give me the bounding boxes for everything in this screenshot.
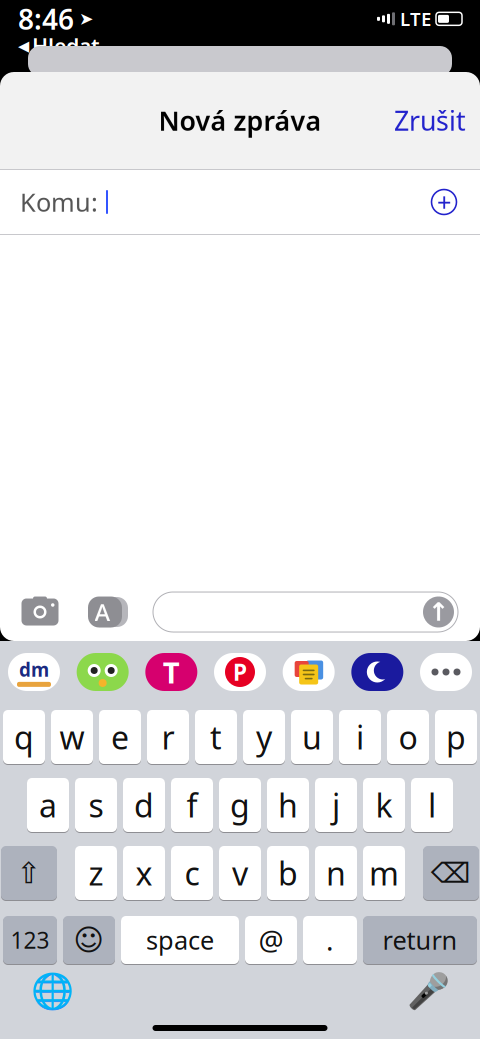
staticText: x [135, 852, 152, 894]
button[interactable]: n [315, 845, 357, 901]
staticText: f [186, 784, 197, 826]
staticText: d [134, 784, 154, 826]
button[interactable]: z [75, 845, 117, 901]
button[interactable]: o [387, 709, 429, 765]
button[interactable]: Apps [82, 595, 128, 629]
button[interactable]: 123 [3, 915, 57, 965]
button[interactable]: s [75, 777, 117, 833]
staticText: u [302, 716, 322, 758]
staticText: m [369, 852, 399, 894]
button[interactable]: Odeslat [423, 596, 454, 627]
button[interactable]: c [171, 845, 213, 901]
button[interactable]: Diktovat [404, 967, 452, 1015]
button[interactable]: T-Mobile [145, 653, 197, 691]
staticText: . [326, 921, 334, 959]
button[interactable]: w [51, 709, 93, 765]
button[interactable]: return [363, 915, 477, 965]
staticText: g [230, 784, 250, 826]
staticText: A [94, 596, 110, 628]
staticText: 8:46 [18, 0, 74, 37]
staticText: dm [19, 657, 49, 682]
staticText: q [14, 716, 34, 758]
button[interactable]: Spánek [351, 653, 403, 691]
staticText: l [428, 784, 436, 826]
staticText: e [111, 716, 129, 758]
button[interactable]: p [435, 709, 477, 765]
staticText: y [256, 716, 272, 758]
button[interactable]: Přidat kontakt [422, 180, 466, 224]
staticText: space [146, 923, 214, 957]
staticText: return [382, 923, 457, 957]
button[interactable]: dm [8, 653, 60, 691]
button[interactable]: @ [245, 915, 297, 965]
staticText: p [446, 716, 466, 758]
staticText: ☺ [73, 923, 104, 957]
button[interactable]: Změnit klávesnici [28, 967, 76, 1015]
button[interactable]: b [267, 845, 309, 901]
button[interactable]: ☺ [63, 915, 115, 965]
button[interactable]: g [219, 777, 261, 833]
staticText: o [398, 716, 417, 758]
button[interactable]: Pinterest [214, 653, 266, 691]
staticText: t [210, 716, 222, 758]
button[interactable]: a [27, 777, 69, 833]
staticText: Nová zpráva [158, 103, 321, 138]
staticText: v [232, 852, 248, 894]
staticText: j [332, 784, 340, 826]
button[interactable]: d [123, 777, 165, 833]
button[interactable]: x [123, 845, 165, 901]
staticText: @ [258, 921, 283, 959]
button[interactable]: i [339, 709, 381, 765]
staticText: w [59, 716, 84, 758]
staticText: ↑ [428, 598, 449, 626]
button[interactable]: . [303, 915, 357, 965]
button[interactable]: k [363, 777, 405, 833]
staticText: n [326, 852, 346, 894]
staticText: P [233, 657, 247, 687]
staticText: a [39, 784, 57, 826]
button[interactable]: Duolingo [77, 653, 129, 691]
button[interactable]: j [315, 777, 357, 833]
button[interactable]: q [3, 709, 45, 765]
button[interactable]: m [363, 845, 405, 901]
button[interactable]: f [171, 777, 213, 833]
button[interactable]: l [411, 777, 453, 833]
button[interactable]: v [219, 845, 261, 901]
button[interactable]: ⌫ [423, 845, 479, 901]
button[interactable]: ⇧ [1, 845, 57, 901]
staticText: ◀ [18, 38, 29, 54]
staticText: k [375, 784, 392, 826]
staticText: ⇧ [16, 856, 41, 890]
button[interactable]: Fotoaparát [20, 595, 60, 629]
staticText: Zrušit [394, 103, 466, 138]
button[interactable]: u [291, 709, 333, 765]
staticText: Komu: [20, 185, 98, 219]
staticText: i [356, 716, 364, 758]
staticText: z [88, 852, 103, 894]
staticText: 🎤 [406, 971, 449, 1011]
button[interactable]: e [99, 709, 141, 765]
button[interactable]: Zrušit [380, 95, 480, 146]
button[interactable]: Další [420, 653, 472, 691]
staticText: LTE [400, 6, 431, 31]
staticText: 🌐 [30, 971, 73, 1011]
button[interactable]: t [195, 709, 237, 765]
staticText: b [278, 852, 298, 894]
staticText: r [161, 716, 174, 758]
button[interactable]: Poznámky [283, 653, 335, 691]
button[interactable]: r [147, 709, 189, 765]
staticText: h [278, 784, 298, 826]
staticText: s [88, 784, 103, 826]
staticText: T [163, 652, 180, 691]
staticText: ⌫ [431, 857, 471, 889]
button[interactable]: y [243, 709, 285, 765]
button[interactable]: space [121, 915, 239, 965]
staticText: 123 [10, 925, 49, 955]
staticText: ➤ [79, 9, 94, 29]
staticText: c [184, 852, 199, 894]
staticText: + [437, 185, 451, 219]
button[interactable]: h [267, 777, 309, 833]
staticText: Hledat [32, 32, 100, 60]
